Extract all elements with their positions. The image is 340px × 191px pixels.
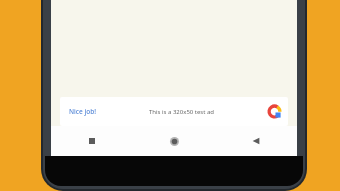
button[interactable]: Ad info [267, 104, 282, 119]
staticText: This is a 320x50 test ad [96, 108, 267, 116]
button[interactable]: Recents [51, 126, 133, 156]
button[interactable]: Nice job! [60, 97, 288, 126]
button[interactable]: Back [215, 126, 297, 156]
staticText: Nice job! [69, 107, 96, 116]
button[interactable]: Home [133, 126, 215, 156]
